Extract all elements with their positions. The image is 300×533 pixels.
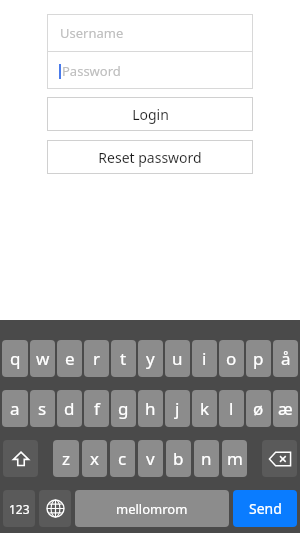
staticText: g	[118, 397, 129, 420]
staticText: æ	[278, 397, 293, 420]
staticText: ø	[253, 397, 264, 420]
button[interactable]: v	[138, 440, 163, 477]
staticText: o	[226, 347, 237, 370]
staticText: 123	[9, 501, 30, 517]
button[interactable]: s	[30, 390, 55, 427]
staticText: w	[36, 347, 50, 370]
button[interactable]: n	[194, 440, 219, 477]
button[interactable]: mellomrom	[75, 490, 229, 527]
staticText: Send	[249, 499, 282, 518]
button[interactable]: Send	[233, 490, 297, 527]
button[interactable]: t	[111, 340, 136, 377]
button[interactable]: a	[2, 390, 28, 427]
staticText: p	[253, 347, 264, 370]
staticText: e	[65, 347, 75, 370]
button[interactable]: i	[192, 340, 217, 377]
staticText: Username	[60, 24, 124, 42]
button[interactable]: q	[2, 340, 28, 377]
button[interactable]: h	[138, 390, 163, 427]
button[interactable]: e	[57, 340, 82, 377]
button[interactable]: z	[53, 440, 79, 477]
staticText: h	[145, 397, 156, 420]
staticText: c	[118, 447, 127, 470]
staticText: x	[90, 447, 99, 470]
button[interactable]: x	[82, 440, 107, 477]
button[interactable]: j	[165, 390, 190, 427]
staticText: m	[227, 447, 243, 470]
button[interactable]: b	[166, 440, 191, 477]
button[interactable]: y	[138, 340, 163, 377]
staticText: i	[202, 347, 207, 370]
button[interactable]: p	[246, 340, 271, 377]
staticText: r	[93, 347, 101, 370]
button[interactable]: Reset password	[47, 140, 253, 174]
button[interactable]: æ	[273, 390, 298, 427]
staticText: Reset password	[98, 148, 202, 167]
staticText: z	[62, 447, 70, 470]
staticText: l	[229, 397, 234, 420]
staticText: Login	[132, 105, 169, 124]
staticText: n	[201, 447, 212, 470]
staticText: y	[146, 347, 155, 370]
button[interactable]: Password	[47, 52, 253, 89]
button[interactable]: d	[57, 390, 82, 427]
staticText: f	[94, 397, 100, 420]
button[interactable]: Login	[47, 97, 253, 131]
staticText: j	[175, 397, 180, 420]
button[interactable]: ø	[246, 390, 271, 427]
button[interactable]: 123	[3, 490, 35, 527]
staticText: v	[146, 447, 155, 470]
staticText: b	[173, 447, 184, 470]
button[interactable]: å	[273, 340, 298, 377]
button[interactable]: f	[84, 390, 109, 427]
button[interactable]: Username	[47, 14, 253, 51]
button[interactable]: w	[30, 340, 55, 377]
staticText: d	[64, 397, 75, 420]
staticText: u	[172, 347, 183, 370]
staticText: mellomrom	[116, 500, 188, 518]
staticText: å	[281, 347, 291, 370]
button[interactable]: Change keyboard language	[39, 490, 71, 527]
button[interactable]: m	[222, 440, 247, 477]
staticText: a	[10, 397, 20, 420]
staticText: Password	[62, 62, 121, 80]
staticText: k	[200, 397, 210, 420]
staticText: t	[120, 347, 127, 370]
button[interactable]: l	[219, 390, 244, 427]
button[interactable]: Backspace	[262, 440, 297, 477]
button[interactable]: c	[110, 440, 135, 477]
button[interactable]: o	[219, 340, 244, 377]
staticText: q	[10, 347, 21, 370]
button[interactable]: u	[165, 340, 190, 377]
button[interactable]: r	[84, 340, 109, 377]
staticText: s	[38, 397, 47, 420]
button[interactable]: g	[111, 390, 136, 427]
button[interactable]: Shift	[3, 440, 38, 477]
button[interactable]: k	[192, 390, 217, 427]
